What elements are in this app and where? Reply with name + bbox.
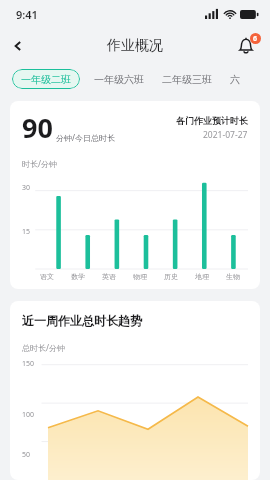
staticText: 近一周作业总时长趋势 xyxy=(22,313,142,328)
staticText: 物理 xyxy=(133,272,147,281)
staticText: 时长/分钟 xyxy=(22,158,57,169)
staticText: 生物 xyxy=(226,272,240,281)
staticText: 100 xyxy=(22,410,35,420)
staticText: 9:41 xyxy=(16,7,38,22)
staticText: 地理 xyxy=(195,272,209,281)
staticText: 50 xyxy=(22,450,31,460)
staticText: 15 xyxy=(22,227,31,237)
staticText: 分钟/今日总时长 xyxy=(56,132,115,143)
button[interactable]: 六 xyxy=(228,69,242,89)
staticText: 作业概况 xyxy=(107,37,163,55)
staticText: 历史 xyxy=(164,272,178,281)
staticText: 150 xyxy=(22,359,35,369)
staticText: 各门作业预计时长 xyxy=(176,115,248,126)
staticText: 语文 xyxy=(40,272,54,281)
button[interactable]: 近一周作业总时长趋势 xyxy=(10,301,260,480)
button[interactable]: Back xyxy=(0,28,36,64)
staticText: 2021-07-27 xyxy=(203,129,248,141)
button[interactable]: 二年级三班 xyxy=(160,69,214,89)
button[interactable]: 一年级六班 xyxy=(92,69,146,89)
button[interactable]: 90 xyxy=(10,101,260,289)
staticText: 90 xyxy=(22,109,53,146)
staticText: 6 xyxy=(253,34,258,44)
staticText: 六 xyxy=(230,73,240,86)
button[interactable]: 一年级二班 xyxy=(12,69,80,89)
staticText: 一年级二班 xyxy=(21,73,71,86)
staticText: 30 xyxy=(22,183,31,193)
staticText: 二年级三班 xyxy=(162,73,212,86)
button[interactable]: Notifications xyxy=(230,30,262,62)
staticText: 一年级六班 xyxy=(94,73,144,86)
staticText: 数学 xyxy=(71,272,85,281)
staticText: 英语 xyxy=(102,272,116,281)
staticText: 总时长/分钟 xyxy=(22,342,65,353)
